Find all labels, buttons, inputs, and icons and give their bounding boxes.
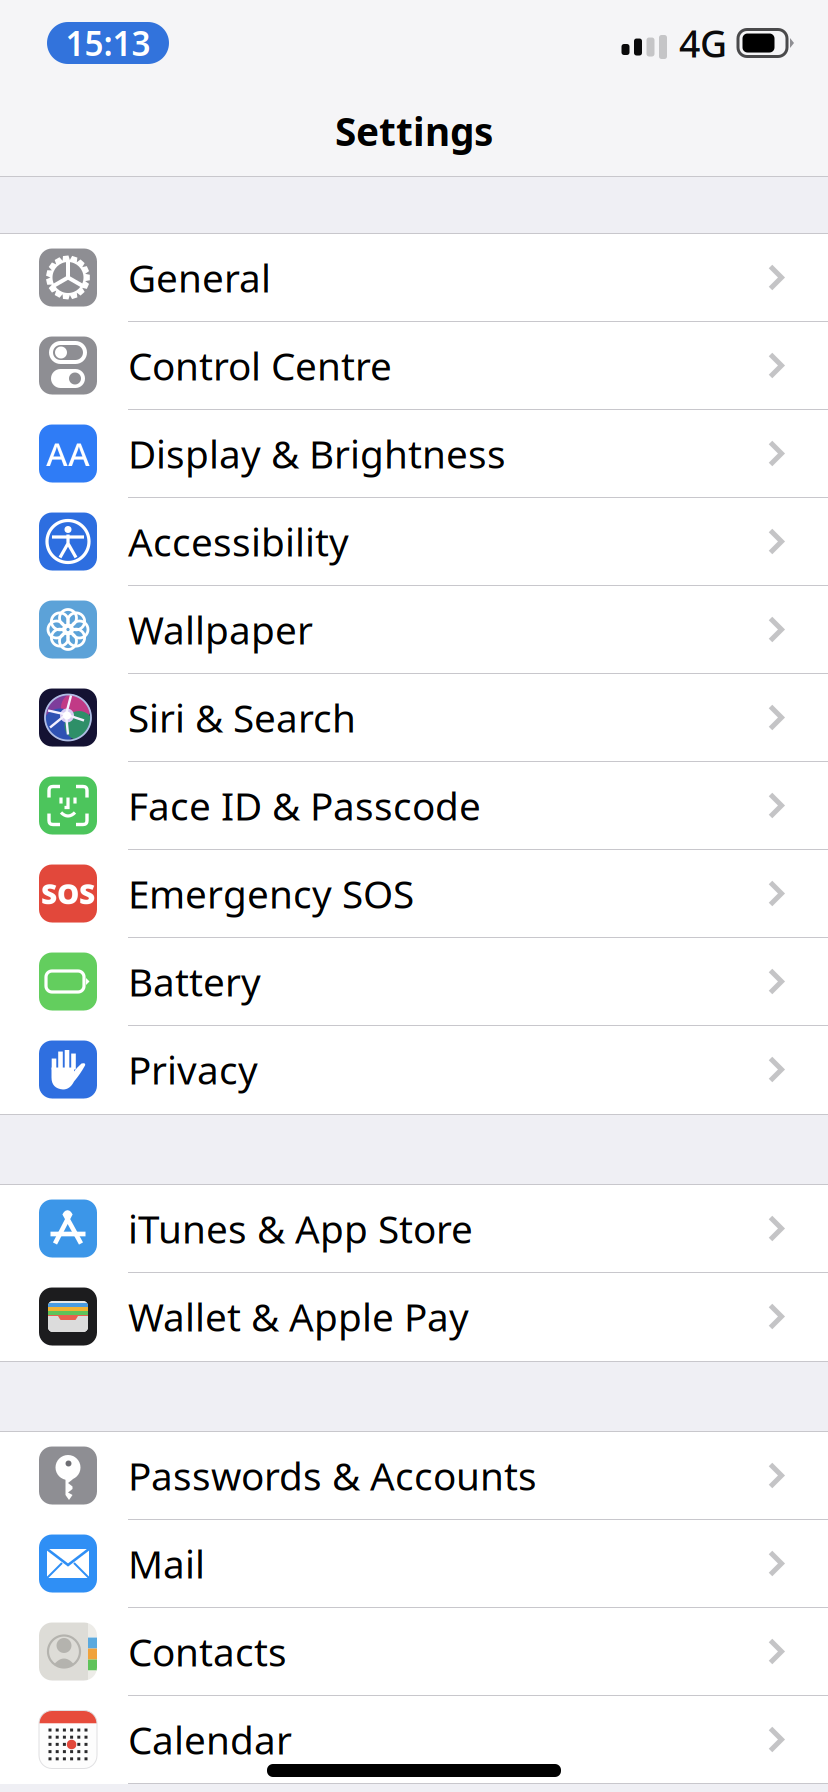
button[interactable]: Face ID & Passcode (0, 762, 828, 850)
staticText: Emergency SOS (128, 868, 414, 919)
staticText: Contacts (128, 1626, 287, 1677)
staticText: Battery (128, 956, 261, 1007)
staticText: Face ID & Passcode (128, 780, 481, 831)
staticText: General (128, 252, 271, 303)
button[interactable]: General (0, 234, 828, 322)
staticText: Passwords & Accounts (128, 1450, 537, 1501)
staticText: Calendar (128, 1714, 292, 1765)
staticText: Control Centre (128, 340, 392, 391)
button[interactable]: Wallet & Apple Pay (0, 1273, 828, 1361)
staticText: 4G (679, 18, 727, 68)
button[interactable]: Contacts (0, 1608, 828, 1696)
staticText: 15:13 (65, 21, 150, 65)
staticText: Accessibility (128, 516, 349, 567)
button[interactable]: Passwords & Accounts (0, 1432, 828, 1520)
button[interactable]: Accessibility (0, 498, 828, 586)
staticText: AA (46, 431, 90, 476)
button[interactable]: Calendar (0, 1696, 828, 1784)
button[interactable]: Mail (0, 1520, 828, 1608)
staticText: SOS (41, 875, 95, 912)
button[interactable]: iTunes & App Store (0, 1185, 828, 1273)
staticText: iTunes & App Store (128, 1203, 473, 1254)
staticText: Privacy (128, 1044, 258, 1095)
staticText: Display & Brightness (128, 428, 506, 479)
button[interactable]: SOS (0, 850, 828, 938)
button[interactable]: Privacy (0, 1026, 828, 1114)
button[interactable]: AA (0, 410, 828, 498)
button[interactable]: Wallpaper (0, 586, 828, 674)
button[interactable]: Control Centre (0, 322, 828, 410)
staticText: Siri & Search (128, 692, 356, 743)
staticText: Wallet & Apple Pay (128, 1291, 469, 1342)
staticText: Mail (128, 1538, 205, 1589)
staticText: Wallpaper (128, 604, 313, 655)
button[interactable]: Battery (0, 938, 828, 1026)
staticText: Settings (335, 105, 493, 157)
button[interactable]: Siri & Search (0, 674, 828, 762)
